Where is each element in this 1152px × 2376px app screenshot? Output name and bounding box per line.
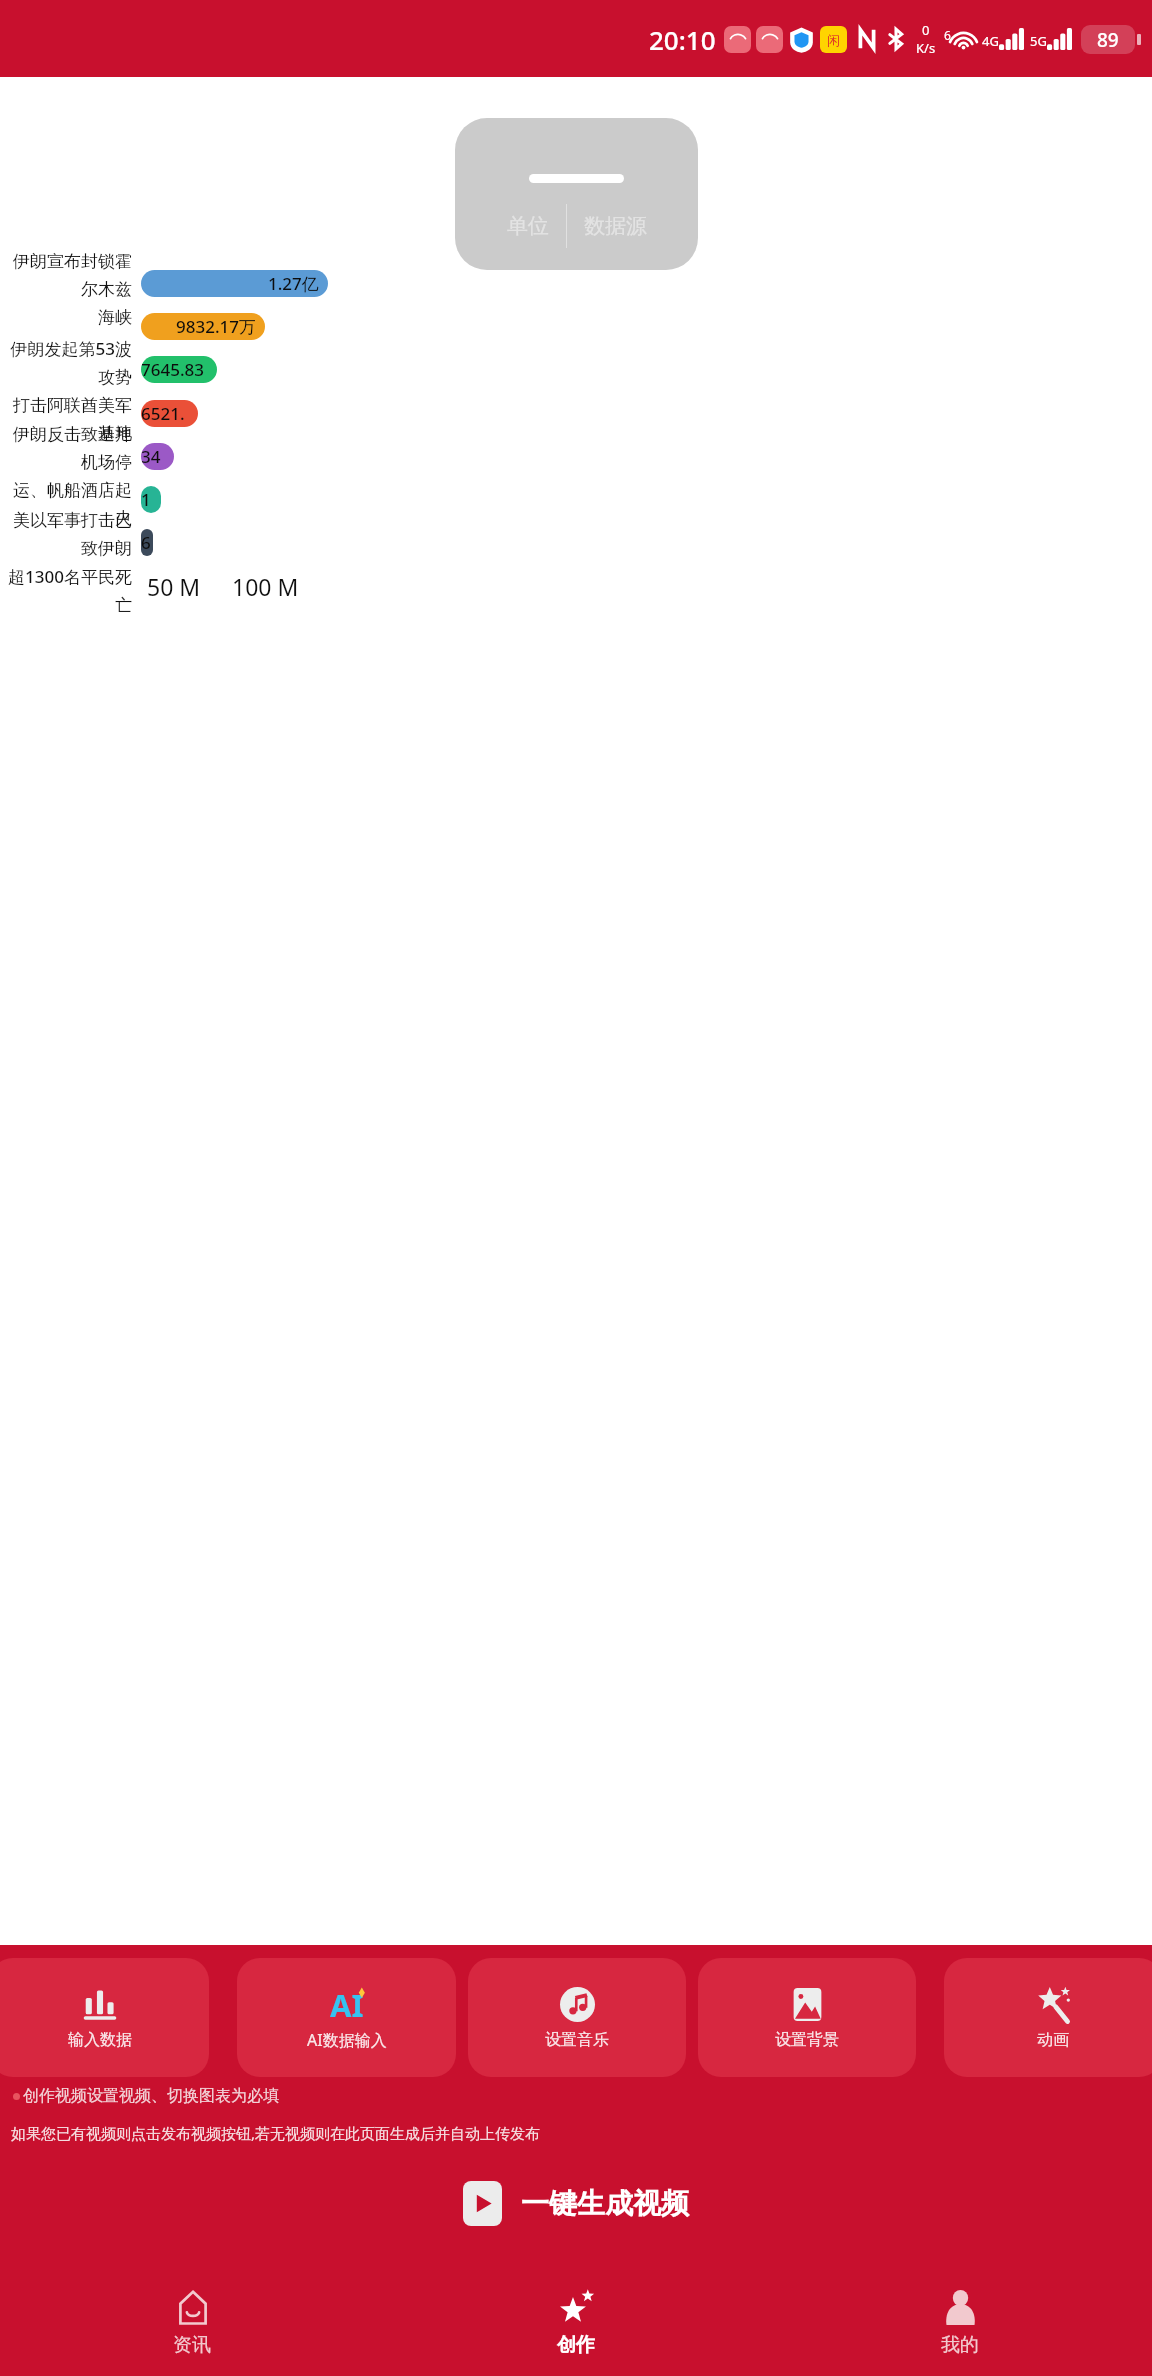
staticText: 635万 [141, 531, 144, 554]
staticText: 动画 [1037, 2030, 1069, 2050]
button[interactable]: 设置背景 [698, 1958, 916, 2077]
staticText: 6521.49万 [141, 402, 189, 425]
staticText: 闲 [827, 32, 840, 48]
button[interactable]: 一键生成视频 [0, 2181, 1152, 2226]
staticText: 我的 [941, 2333, 979, 2357]
button[interactable]: 输入数据 [0, 1958, 209, 2077]
button[interactable]: 1987万 [141, 486, 161, 513]
staticText: K/s [916, 39, 936, 57]
staticText: 100 M [232, 571, 299, 602]
button[interactable]: 635万 [141, 529, 153, 556]
staticText: 6 [944, 27, 951, 43]
staticText: 伊朗宣布封锁霍尔木兹 海峡 [0, 251, 132, 328]
staticText: 20:10 [649, 22, 716, 57]
button[interactable]: 设置音乐 [468, 1958, 686, 2077]
button[interactable]: 我的 [768, 2268, 1152, 2376]
staticText: 4G [982, 32, 999, 50]
button[interactable]: 创作 [384, 2268, 768, 2376]
button[interactable]: 单位与数据源 [455, 118, 698, 270]
staticText: 美以军事打击已致伊朗 超1300名平民死亡 [0, 510, 132, 616]
staticText: 创作 [557, 2333, 595, 2357]
staticText: 7645.83万 [141, 358, 208, 381]
staticText: AI [330, 1984, 364, 2022]
staticText: 1.27亿 [268, 272, 319, 295]
button[interactable]: AI [237, 1958, 456, 2077]
button[interactable]: 动画 [944, 1958, 1152, 2077]
button[interactable]: 6521.49万 [141, 400, 198, 427]
staticText: 0 [922, 21, 930, 39]
button[interactable]: 3479.32万 [141, 443, 174, 470]
staticText: 设置音乐 [545, 2030, 609, 2050]
staticText: 如果您已有视频则点击发布视频按钮,若无视频则在此页面生成后并自动上传发布 [11, 2123, 541, 2143]
button[interactable]: 资讯 [0, 2268, 384, 2376]
staticText: 1987万 [141, 488, 152, 511]
staticText: 9832.17万 [176, 315, 256, 338]
staticText: 89 [1097, 27, 1119, 53]
staticText: 伊朗发起第53波攻势 打击阿联酋美军基地 [0, 337, 132, 444]
staticText: 单位 [507, 213, 549, 239]
button[interactable]: 7645.83万 [141, 356, 217, 383]
staticText: 50 M [147, 571, 201, 602]
staticText: 伊朗反击致迪拜机场停 运、帆船酒店起火 [0, 424, 132, 529]
staticText: 设置背景 [775, 2030, 839, 2050]
staticText: 输入数据 [68, 2030, 132, 2050]
staticText: 5G [1030, 32, 1047, 50]
staticText: 创作视频设置视频、切换图表为必填 [23, 2086, 279, 2106]
button[interactable]: 9832.17万 [141, 313, 265, 340]
button[interactable]: 1.27亿 [141, 270, 328, 297]
staticText: AI数据输入 [307, 2029, 387, 2051]
staticText: 资讯 [173, 2333, 211, 2357]
staticText: 数据源 [584, 213, 647, 239]
staticText: 3479.32万 [141, 445, 165, 468]
staticText: 一键生成视频 [521, 2186, 689, 2221]
